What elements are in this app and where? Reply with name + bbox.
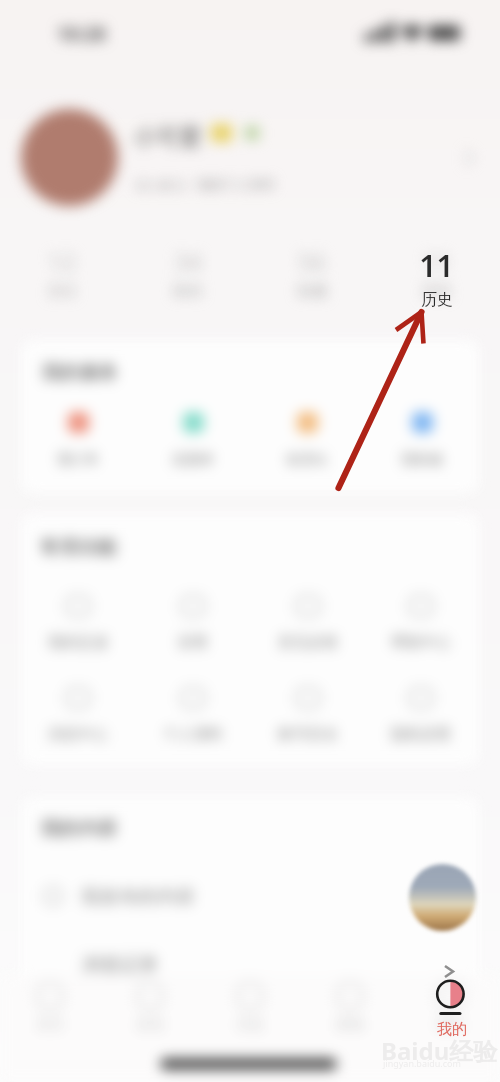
staticText: 10:28 [57,21,106,47]
staticText: 收货址 [286,451,328,469]
staticText: 我发布的内容 [81,885,195,909]
staticText: 历史 [421,290,453,310]
button[interactable]: 优惠券 [157,412,229,469]
button[interactable]: 我的足迹 [42,594,114,652]
staticText: 意见反馈 [278,633,338,652]
staticText: 常用功能 [40,536,116,560]
staticText: 我的服务 [42,361,118,385]
button[interactable]: 我订单 [42,412,114,469]
staticText: 56 [298,245,326,278]
button[interactable]: 个人资料 [157,686,229,744]
button[interactable]: 帮助中心 [385,594,457,652]
button[interactable]: 11 [387,245,487,301]
button[interactable]: 34 [138,245,238,301]
staticText: 优惠券 [172,451,214,469]
staticText: jingyan.baidu.com [383,1057,461,1069]
staticText: 收藏 [297,282,327,301]
button[interactable]: 56 [262,245,362,301]
staticText: 帮助中心 [391,633,451,652]
button[interactable]: 消息中心 [42,686,114,744]
staticText: Baidu经验 [381,1034,498,1067]
button[interactable]: 购物 [300,981,400,1034]
staticText: 设置 [178,633,208,652]
staticText: 编辑个人资料 [197,176,275,192]
staticText: 我的内容 [41,817,117,841]
staticText: 账号安全 [278,725,338,744]
staticText: 历史 [422,282,452,301]
staticText: 34 [174,245,202,278]
button[interactable]: 账号安全 [272,686,344,744]
staticText: 11 [419,245,454,286]
staticText: 我客服 [401,451,443,469]
staticText: 消息中心 [48,725,108,744]
staticText: 我的 [437,1020,467,1039]
button[interactable]: 我的 [424,978,476,1036]
button[interactable]: 我客服 [386,412,458,469]
staticText: 浏览记录 [82,953,158,977]
staticText: 小可爱 [133,123,202,152]
staticText: 我订单 [57,451,99,469]
button[interactable]: 隐私设置 [385,686,457,744]
button[interactable]: 意见反馈 [272,594,344,652]
staticText: 11 [423,245,451,278]
button[interactable]: 12 [12,245,112,301]
staticText: 隐私设置 [391,725,451,744]
button[interactable]: 我的 [400,981,500,1034]
staticText: 粉丝 [173,282,203,301]
button[interactable]: 收货址 [271,412,343,469]
staticText: 我的足迹 [48,633,108,652]
staticText: 个人资料 [163,725,223,744]
button[interactable]: 设置 [157,594,229,652]
staticText: 我的 [436,1016,464,1034]
